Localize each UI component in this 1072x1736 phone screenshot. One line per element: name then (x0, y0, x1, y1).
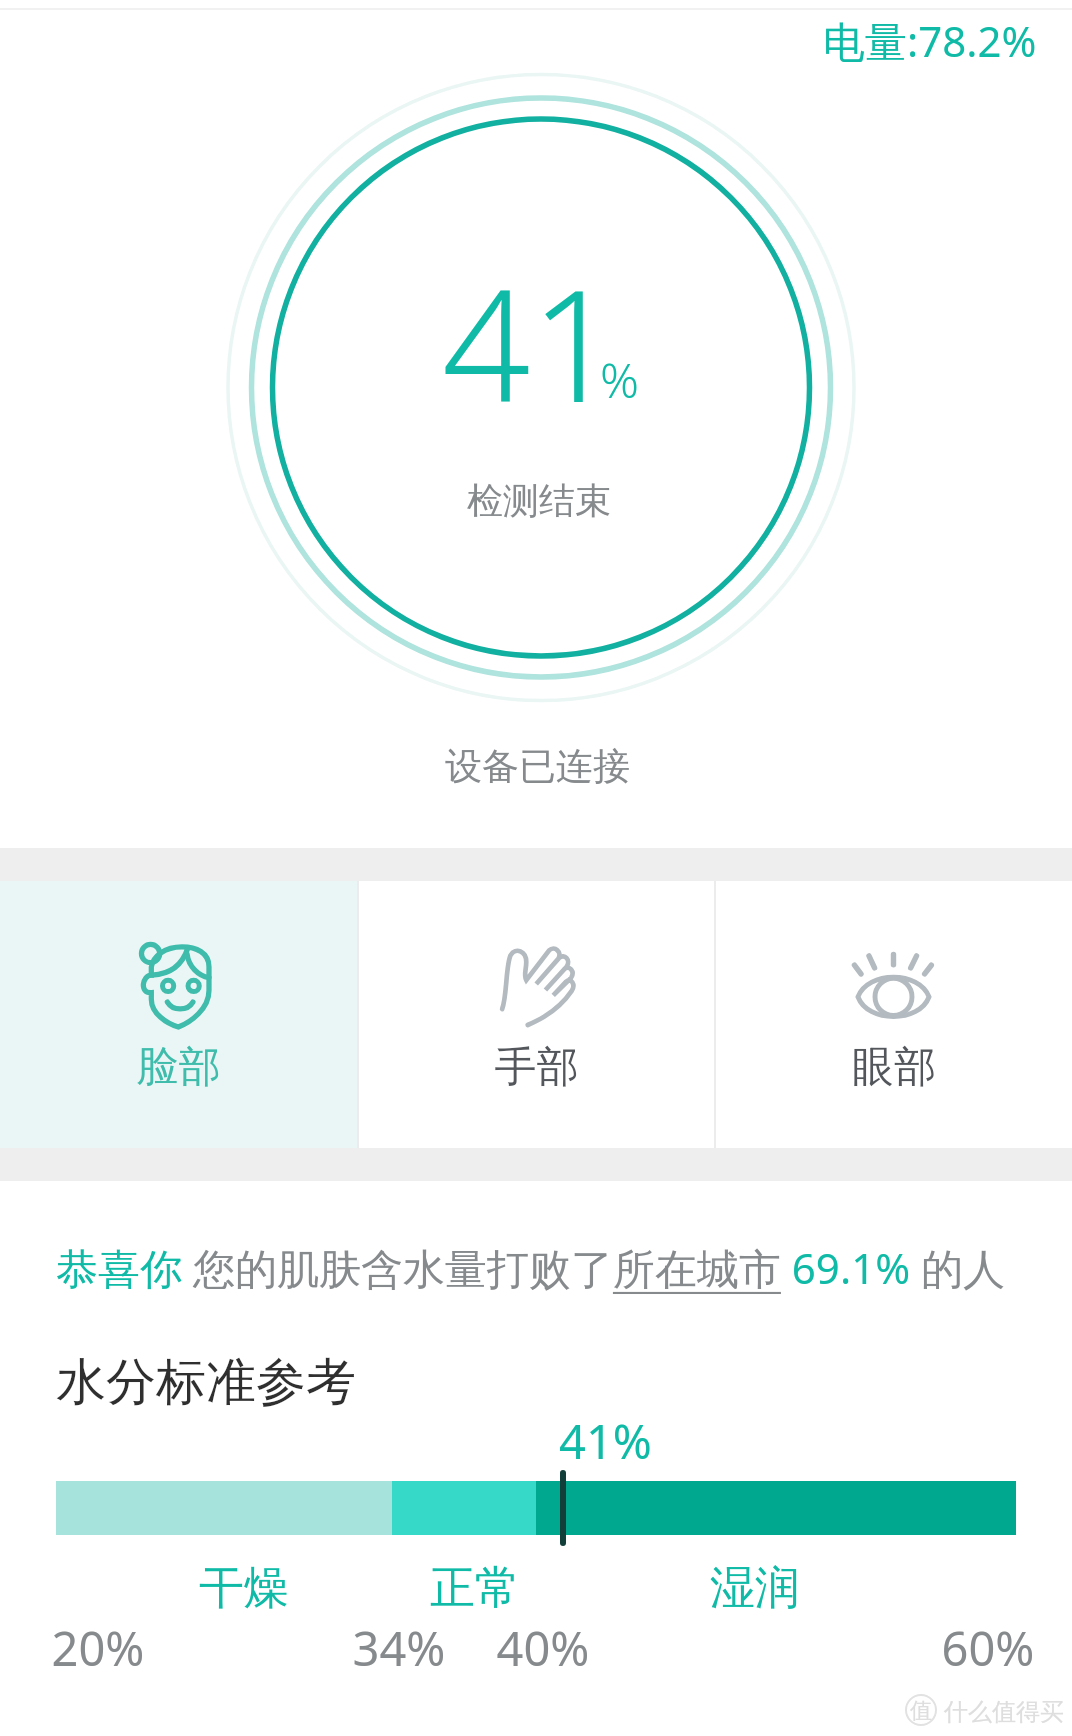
staticText: 眼部 (716, 1041, 1072, 1094)
staticText: 值 (910, 1697, 932, 1725)
staticText: 41% (559, 1409, 652, 1473)
staticText: 设备已连接 (445, 743, 630, 790)
staticText: 20% (0, 1616, 298, 1680)
staticText: % (600, 347, 639, 412)
staticText: 手部 (359, 1041, 714, 1094)
staticText: 什么值得买 (944, 1697, 1064, 1727)
staticText: 湿润 (555, 1560, 955, 1617)
staticText: 41 (442, 236, 620, 447)
staticText: 水分标准参考 (56, 1351, 356, 1414)
other: Hand (359, 949, 714, 1025)
button[interactable]: Face (0, 881, 357, 1148)
button[interactable]: Eye (716, 881, 1072, 1148)
staticText: 脸部 (0, 1041, 357, 1094)
button[interactable]: Hand (359, 881, 714, 1148)
staticText: 检测结束 (467, 478, 611, 523)
staticText: 正常 (275, 1560, 675, 1617)
staticText: 60% (788, 1616, 1072, 1680)
other: Eye (716, 944, 1071, 1018)
other: Face (0, 944, 357, 1027)
staticText: 干燥 (44, 1560, 444, 1617)
staticText: 电量:78.2% (823, 12, 1037, 69)
staticText: 40% (343, 1616, 743, 1680)
staticText: 恭喜你 您的肌肤含水量打败了所在城市 69.1% 的人 (56, 1239, 1005, 1296)
staticText: 34% (199, 1616, 599, 1680)
